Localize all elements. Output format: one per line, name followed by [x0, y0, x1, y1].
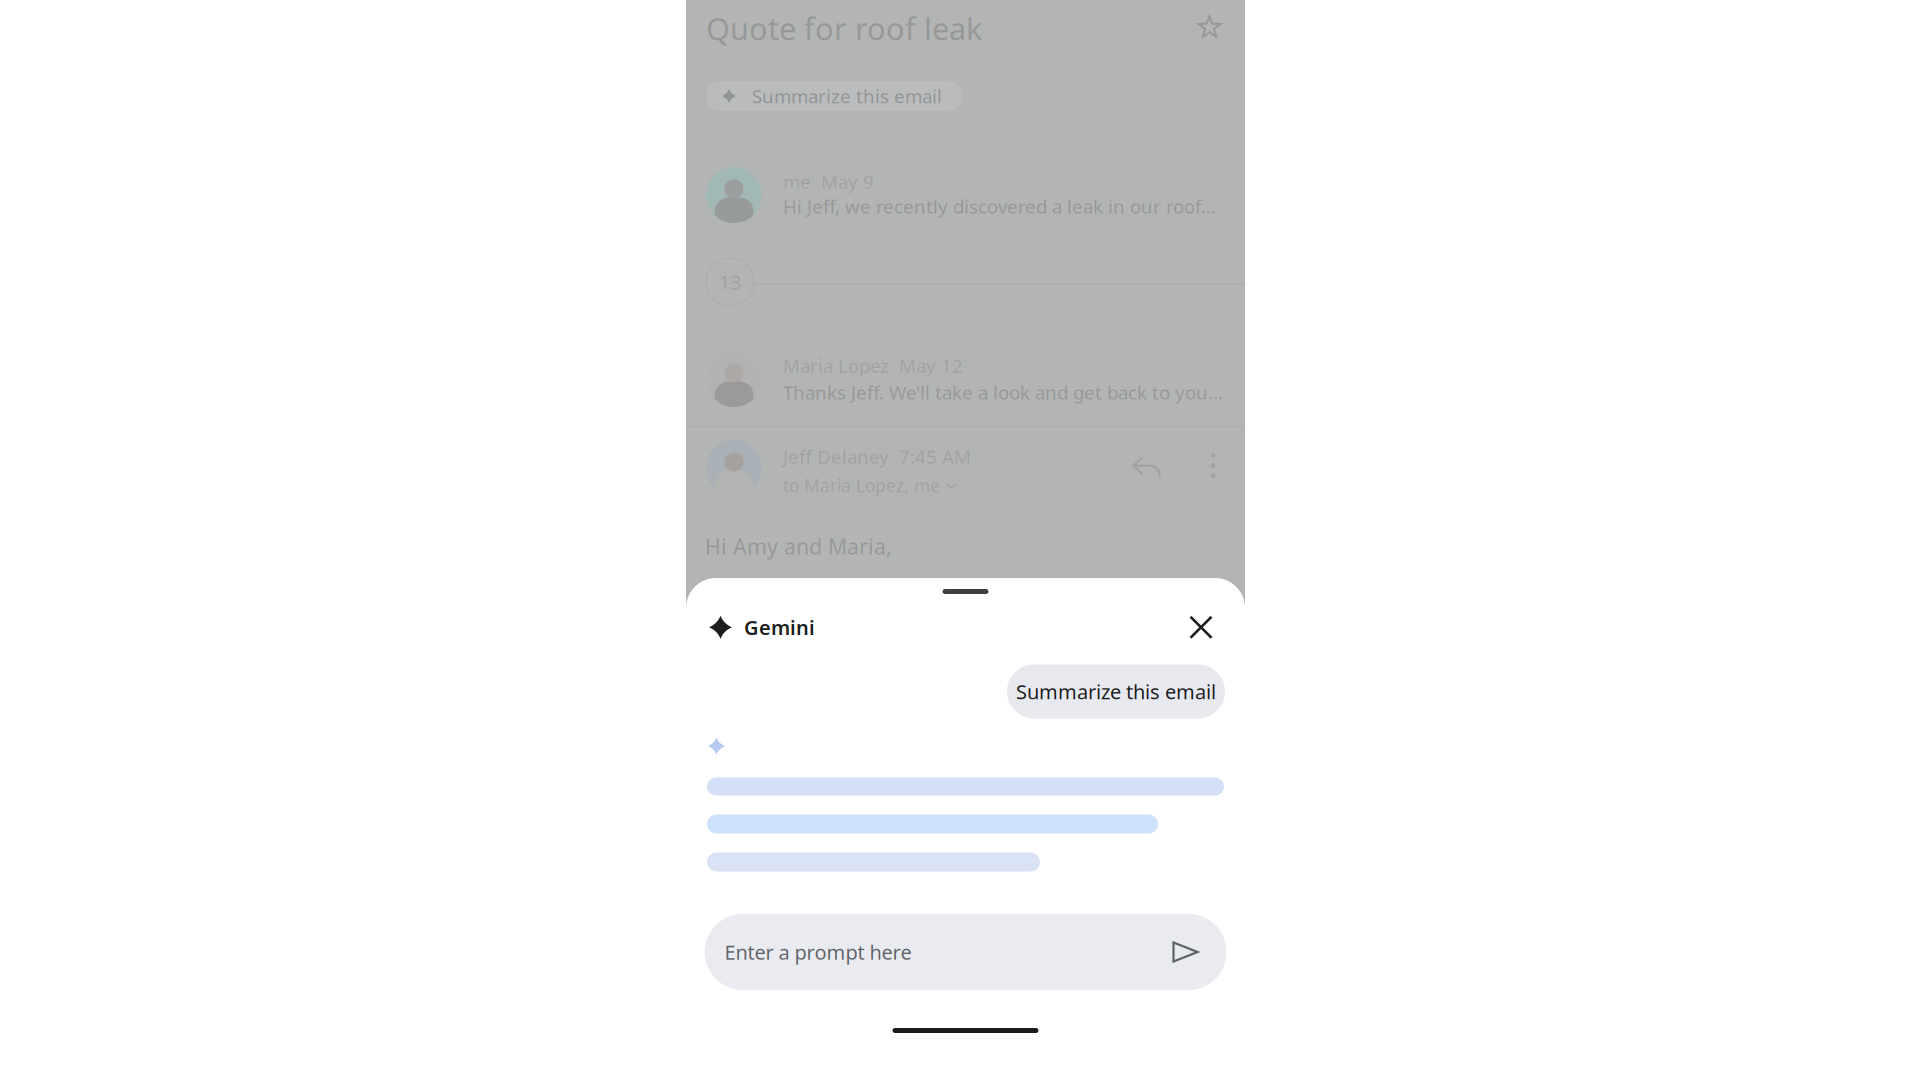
staticText: Thanks Jeff. We'll take a look and get b…: [783, 380, 1223, 405]
staticText: Hi Jeff, we recently discovered a leak i…: [783, 194, 1216, 219]
staticText: 13: [719, 269, 741, 295]
staticText: Jeff Delaney 7:45 AM: [783, 444, 971, 469]
staticText: Summarize this email: [1016, 678, 1216, 705]
button[interactable]: Summarize this email: [706, 81, 962, 111]
button[interactable]: More options: [1202, 452, 1224, 479]
button[interactable]: Enter a prompt here: [704, 914, 1226, 990]
button[interactable]: Gemini: [709, 605, 815, 650]
button[interactable]: Reply: [1132, 452, 1162, 482]
staticText: Quote for roof leak: [706, 8, 982, 49]
button[interactable]: 13: [706, 258, 754, 306]
button[interactable]: Close: [1179, 605, 1223, 649]
staticText: Gemini: [744, 614, 815, 641]
button[interactable]: Maria Lopez May 12: [706, 351, 1225, 407]
button[interactable]: Star: [1198, 16, 1221, 39]
staticText: to Maria Lopez, me: [783, 474, 940, 497]
staticText: Maria Lopez May 12: [783, 353, 963, 378]
staticText: Hi Amy and Maria,: [705, 532, 892, 560]
button[interactable]: me May 9: [706, 167, 1225, 223]
staticText: me May 9: [783, 169, 874, 194]
staticText: Summarize this email: [752, 84, 942, 108]
staticText: Enter a prompt here: [724, 939, 911, 965]
button[interactable]: Summarize this email: [1007, 665, 1225, 719]
